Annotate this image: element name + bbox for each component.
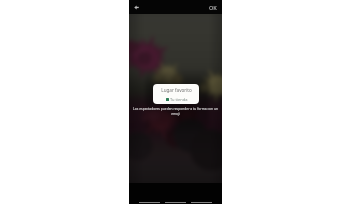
staticText: Lugar favorito <box>161 87 192 93</box>
button[interactable]: Lugar favorito <box>153 84 199 104</box>
staticText: OK <box>209 4 217 11</box>
staticText: Los espectadores pueden responder a tu f… <box>130 106 221 116</box>
button[interactable]: OK <box>203 0 222 14</box>
staticText: Tu tienda <box>170 97 188 102</box>
button[interactable]: Back <box>129 0 144 14</box>
